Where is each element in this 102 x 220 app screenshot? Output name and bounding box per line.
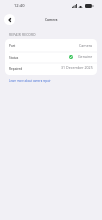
staticText: Genuine xyxy=(78,54,93,59)
button[interactable]: Status xyxy=(5,51,97,62)
button[interactable]: Learn more about camera repair xyxy=(9,79,102,83)
staticText: 31 December 2025 xyxy=(61,65,93,70)
button[interactable]: Repaired xyxy=(5,62,97,73)
staticText: 12:40 xyxy=(14,3,25,9)
staticText: Repaired xyxy=(9,67,23,71)
staticText: Learn more about camera repair xyxy=(9,79,51,83)
button[interactable]: Back xyxy=(4,14,15,25)
staticText: Part xyxy=(9,44,16,48)
button[interactable]: Part xyxy=(5,39,97,51)
staticText: Camera xyxy=(45,17,58,21)
staticText: REPAIR RECORD xyxy=(9,33,36,37)
staticText: Camera xyxy=(79,43,93,48)
staticText: Status xyxy=(9,56,19,60)
